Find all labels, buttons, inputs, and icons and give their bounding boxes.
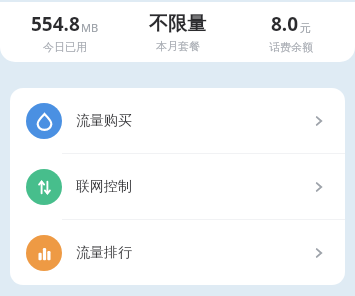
other: 打开 联网控制 xyxy=(309,177,329,197)
staticText: 联网控制 xyxy=(76,178,309,196)
button[interactable]: 流量购买 xyxy=(10,88,345,153)
staticText: 554.8 xyxy=(31,11,80,37)
other: 打开 流量购买 xyxy=(309,111,329,131)
staticText: 8.0 xyxy=(271,11,299,37)
button[interactable]: 流量排行 xyxy=(10,220,345,285)
staticText: 今日已用 xyxy=(43,40,87,54)
staticText: 本月套餐 xyxy=(156,39,200,53)
staticText: MB xyxy=(81,20,99,35)
staticText: 流量购买 xyxy=(76,112,309,130)
staticText: 元 xyxy=(300,21,311,35)
staticText: 不限量 xyxy=(149,12,206,36)
other: 打开 流量排行 xyxy=(309,243,329,263)
staticText: 流量排行 xyxy=(76,244,309,262)
staticText: 话费余额 xyxy=(269,40,313,54)
button[interactable]: 联网控制 xyxy=(10,154,345,219)
